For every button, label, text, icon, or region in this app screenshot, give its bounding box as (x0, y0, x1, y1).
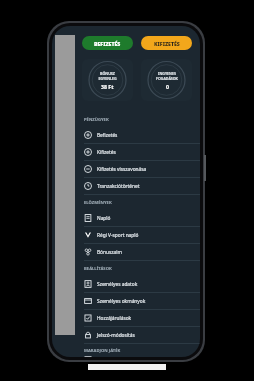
button[interactable]: Jelszó-módosítás (79, 327, 200, 343)
staticText: BÓNUSZ EGYENLEG (98, 71, 117, 81)
staticText: INGYENES FOGADÁSOK (156, 71, 178, 81)
button[interactable]: Napló (79, 210, 200, 226)
button[interactable]: Személyes okmányok (79, 293, 200, 309)
staticText: Személyes adatok (97, 281, 138, 288)
staticText: 38 Ft (101, 83, 114, 90)
button[interactable]: Kifizetés visszavonása (79, 161, 200, 177)
staticText: Jelszó-módosítás (97, 332, 135, 339)
staticText: 0 (166, 83, 169, 90)
staticText: MARADJON JÁTÉK (84, 348, 121, 354)
staticText: ELŐZMÉNYEK (84, 200, 112, 206)
button[interactable]: Régi V-sport napló (79, 227, 200, 243)
staticText: Tranzakciótörténet (97, 183, 140, 190)
staticText: BEÁLLÍTÁSOK (84, 266, 112, 272)
staticText: Bónuszaim (97, 249, 122, 256)
staticText: Napló (97, 215, 111, 222)
button[interactable]: Hozzájárulások (79, 310, 200, 326)
button[interactable]: KIFIZETÉS (141, 36, 192, 50)
button[interactable]: Személyes adatok (79, 276, 200, 292)
button[interactable]: BEFIZETÉS (82, 36, 133, 50)
button[interactable]: INGYENES FOGADÁSOK (141, 59, 192, 101)
staticText: Befizetés (97, 132, 118, 139)
button[interactable]: Tranzakciótörténet (79, 178, 200, 194)
staticText: Hozzájárulások (97, 315, 132, 322)
button[interactable]: BÓNUSZ EGYENLEG (82, 59, 133, 101)
staticText: PÉNZÜGYEK (84, 117, 109, 123)
staticText: Kifizetés visszavonása (97, 166, 147, 173)
button[interactable]: Kifizetés (79, 144, 200, 160)
staticText: Kifizetés (97, 149, 116, 156)
button[interactable]: Befizetés (79, 127, 200, 143)
staticText: Régi V-sport napló (97, 232, 139, 239)
staticText: BEFIZETÉS (94, 40, 121, 47)
staticText: KIFIZETÉS (154, 40, 180, 47)
staticText: Személyes okmányok (97, 298, 146, 305)
button[interactable]: Bónuszaim (79, 244, 200, 260)
